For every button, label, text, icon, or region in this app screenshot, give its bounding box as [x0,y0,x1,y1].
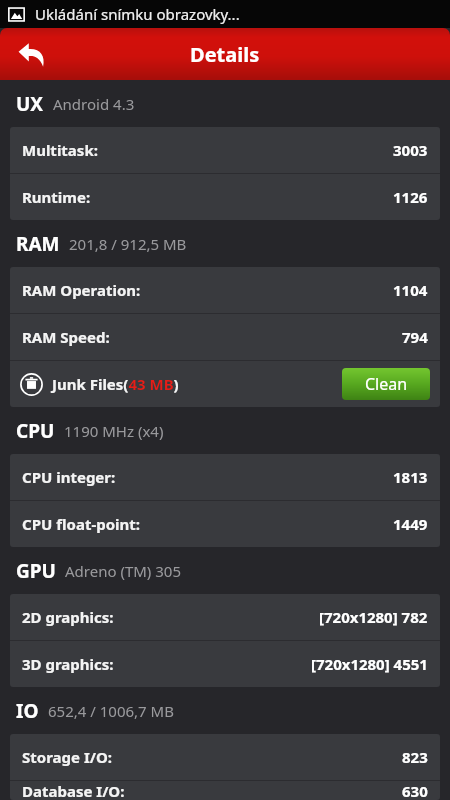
button[interactable]: Database I/O: [10,781,440,800]
button[interactable]: Clean [342,368,430,400]
button[interactable]: CPU integer: [10,454,440,500]
staticText: Clean [365,373,408,395]
button[interactable]: CPU float-point: [10,501,440,547]
staticText: [720x1280] 4551 [311,654,428,674]
button[interactable]: Multitask: [10,127,440,173]
staticText: Android 4.3 [53,94,135,114]
staticText: 823 [402,747,428,767]
staticText: Multitask: [22,140,98,160]
button[interactable]: RAM Operation: [10,267,440,313]
staticText: Ukládání snímku obrazovky... [35,4,240,24]
staticText: Adreno (TM) 305 [65,561,181,581]
button[interactable]: 3D graphics: [10,641,440,687]
staticText: 1190 MHz (x4) [64,421,164,441]
button[interactable]: Runtime: [10,174,440,220]
staticText: GPU [16,558,56,584]
staticText: 1126 [393,187,428,207]
staticText: 1449 [393,514,428,534]
staticText: 652,4 / 1006,7 MB [48,701,174,721]
staticText: CPU [16,418,55,444]
staticText: 1104 [393,280,428,300]
staticText: 1813 [393,467,428,487]
staticText: Database I/O: [22,781,125,800]
staticText: Junk Files(43 MB) [52,374,179,394]
button[interactable]: Back [8,31,54,77]
staticText: 201,8 / 912,5 MB [69,234,187,254]
staticText: Runtime: [22,187,91,207]
staticText: Storage I/O: [22,747,113,767]
staticText: 3003 [393,140,428,160]
staticText: CPU integer: [22,467,116,487]
staticText: 630 [402,781,428,800]
button[interactable]: Storage I/O: [10,734,440,780]
staticText: RAM Operation: [22,280,141,300]
staticText: CPU float-point: [22,514,141,534]
staticText: 2D graphics: [22,607,114,627]
staticText: 3D graphics: [22,654,114,674]
staticText: RAM Speed: [22,327,110,347]
button[interactable]: 2D graphics: [10,594,440,640]
button[interactable]: RAM Speed: [10,314,440,360]
staticText: IO [16,698,39,724]
staticText: [720x1280] 782 [319,607,428,627]
staticText: Details [190,41,260,68]
staticText: UX [16,91,44,117]
staticText: 794 [402,327,428,347]
staticText: RAM [16,231,60,257]
